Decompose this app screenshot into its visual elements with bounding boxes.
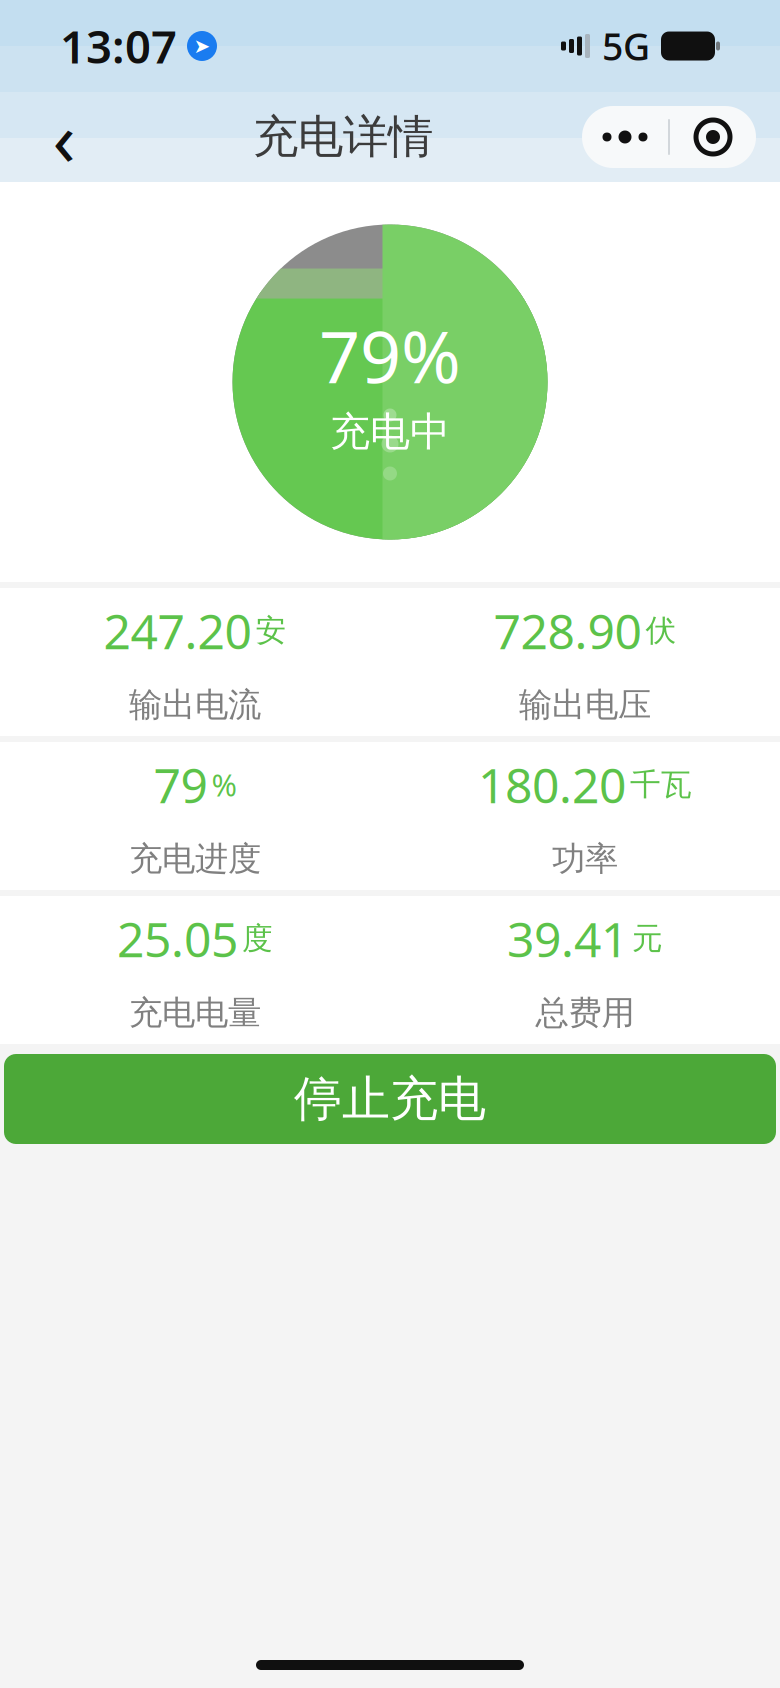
staticText: 180.20 — [478, 753, 626, 816]
staticText: 充电中 — [330, 407, 450, 456]
staticText: 79 — [153, 753, 207, 816]
button[interactable]: 返回 — [24, 97, 104, 177]
staticText: 39.41 — [507, 907, 628, 970]
staticText: 停止充电 — [294, 1069, 486, 1128]
button[interactable]: 停止充电 — [4, 1054, 776, 1144]
staticText: 充电进度 — [129, 838, 261, 879]
staticText: 输出电压 — [519, 684, 651, 725]
staticText: 度 — [242, 920, 273, 957]
staticText: 功率 — [552, 838, 618, 879]
staticText: 安 — [255, 612, 286, 649]
staticText: 728.90 — [493, 599, 641, 662]
staticText: 元 — [632, 920, 663, 957]
button[interactable]: 更多 — [582, 106, 668, 168]
staticText: 5G — [602, 21, 650, 71]
staticText: 25.05 — [117, 907, 238, 970]
staticText: 总费用 — [535, 992, 634, 1033]
staticText: 输出电流 — [129, 684, 261, 725]
staticText: 13:07 — [60, 16, 177, 76]
button[interactable]: 胶囊菜单 — [670, 106, 756, 168]
staticText: 充电电量 — [129, 992, 261, 1033]
staticText: 伏 — [645, 612, 676, 649]
staticText: 充电详情 — [253, 109, 433, 165]
staticText: ➤ — [193, 35, 210, 57]
staticText: % — [211, 764, 236, 805]
staticText: 79% — [319, 308, 461, 403]
staticText: 247.20 — [103, 599, 251, 662]
staticText: 千瓦 — [630, 766, 692, 803]
staticText: ‹ — [52, 87, 75, 187]
